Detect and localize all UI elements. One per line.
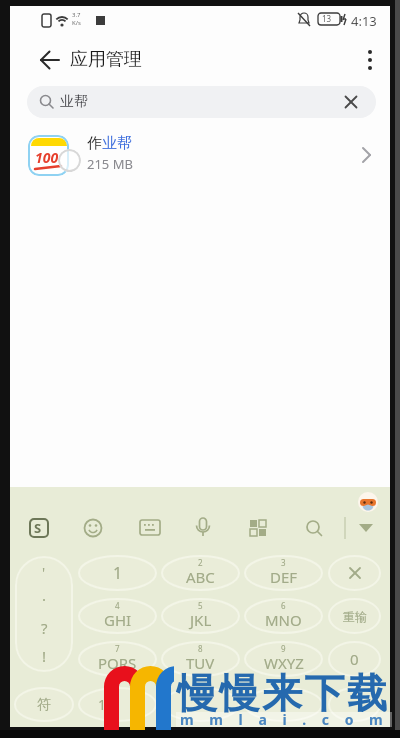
button[interactable]: ' bbox=[15, 556, 73, 672]
staticText: 重输 bbox=[343, 609, 367, 624]
staticText: TUV bbox=[186, 653, 215, 673]
button[interactable] bbox=[79, 688, 156, 721]
staticText: JKL bbox=[190, 610, 212, 630]
staticText: WXYZ bbox=[264, 653, 304, 673]
staticText: 1 bbox=[98, 695, 107, 714]
button[interactable]: 6 bbox=[245, 599, 322, 633]
button[interactable]: 2 bbox=[162, 556, 239, 590]
staticText: ? bbox=[41, 618, 48, 638]
staticText: DEF bbox=[270, 567, 298, 587]
button[interactable] bbox=[40, 51, 60, 69]
staticText: 0 bbox=[350, 649, 359, 669]
staticText: 应用管理 bbox=[70, 48, 142, 71]
staticText: 3 bbox=[281, 557, 286, 568]
staticText: 100 bbox=[35, 148, 59, 167]
staticText: 4:13 bbox=[351, 12, 377, 30]
button[interactable]: 0 bbox=[329, 642, 380, 676]
staticText: 6 bbox=[281, 600, 286, 611]
staticText: 1 bbox=[113, 562, 123, 584]
staticText: 3.7 K/s bbox=[72, 11, 81, 27]
staticText: 业帮 bbox=[60, 93, 88, 111]
staticText: 作 bbox=[87, 134, 102, 153]
staticText: 215 MB bbox=[87, 155, 133, 173]
button[interactable]: 5 bbox=[162, 599, 239, 633]
staticText: 9 bbox=[281, 643, 286, 654]
button[interactable]: 3 bbox=[245, 556, 322, 590]
button[interactable]: 4 bbox=[79, 599, 156, 633]
button[interactable] bbox=[345, 96, 357, 108]
staticText: PQRS bbox=[98, 653, 137, 673]
button[interactable] bbox=[245, 688, 322, 721]
staticText: ' bbox=[42, 563, 46, 582]
staticText: MNO bbox=[265, 610, 302, 630]
button[interactable]: 符 bbox=[15, 688, 73, 721]
button[interactable]: 业帮 bbox=[27, 86, 376, 118]
staticText: 5 bbox=[198, 600, 203, 611]
staticText: 7 bbox=[115, 643, 120, 654]
button[interactable]: 7 bbox=[79, 642, 156, 676]
button[interactable] bbox=[362, 50, 378, 70]
button[interactable]: 9 bbox=[245, 642, 322, 676]
button[interactable]: 1 bbox=[79, 556, 156, 590]
button[interactable]: 8 bbox=[162, 642, 239, 676]
staticText: 2 bbox=[198, 557, 203, 568]
staticText: 业帮 bbox=[102, 134, 132, 153]
staticText: · bbox=[42, 589, 47, 609]
button[interactable] bbox=[329, 556, 380, 590]
staticText: 8 bbox=[198, 643, 203, 654]
button[interactable]: 重输 bbox=[329, 599, 380, 633]
staticText: ABC bbox=[186, 567, 215, 587]
staticText: m m l a i . c o m bbox=[180, 710, 389, 729]
staticText: GHI bbox=[104, 610, 132, 630]
staticText: ! bbox=[42, 646, 47, 666]
button[interactable] bbox=[162, 688, 239, 721]
button[interactable] bbox=[329, 688, 380, 721]
staticText: S bbox=[34, 519, 42, 537]
staticText: 13 bbox=[322, 13, 332, 24]
staticText: 慢慢来下载 bbox=[177, 668, 390, 718]
staticText: 符 bbox=[37, 696, 51, 714]
button[interactable]: 100 bbox=[10, 127, 390, 187]
staticText: 4 bbox=[115, 600, 120, 611]
